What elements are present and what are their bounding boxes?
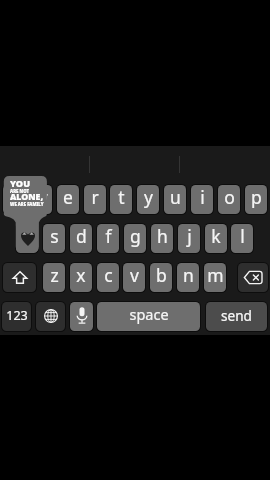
button[interactable]: j	[178, 224, 200, 253]
staticText: YOU	[10, 178, 30, 190]
button[interactable]: f	[97, 224, 119, 253]
button[interactable]: s	[43, 224, 65, 253]
staticText: send	[221, 306, 252, 325]
staticText: l	[240, 224, 245, 248]
staticText: q	[9, 185, 20, 209]
button[interactable]: space	[97, 302, 200, 331]
button[interactable]: r	[84, 185, 106, 214]
button[interactable]: g	[124, 224, 146, 253]
button[interactable]: Voice input	[70, 302, 93, 331]
staticText: b	[156, 263, 167, 287]
button[interactable]: q	[3, 185, 25, 214]
staticText: i	[200, 185, 205, 209]
staticText: d	[76, 224, 87, 248]
button[interactable]: u	[164, 185, 186, 214]
staticText: 123	[6, 307, 28, 324]
button[interactable]: m	[204, 263, 226, 292]
staticText: w	[34, 185, 48, 209]
button[interactable]: w	[30, 185, 52, 214]
button[interactable]: x	[70, 263, 92, 292]
button[interactable]: d	[70, 224, 92, 253]
staticText: g	[130, 224, 141, 248]
staticText: o	[224, 185, 235, 209]
button[interactable]: Heart sticker	[16, 224, 38, 253]
button[interactable]: p	[245, 185, 267, 214]
button[interactable]: h	[151, 224, 173, 253]
button[interactable]: o	[218, 185, 240, 214]
button[interactable]: t	[110, 185, 132, 214]
button[interactable]: n	[177, 263, 199, 292]
button[interactable]: k	[205, 224, 227, 253]
button[interactable]: 123	[2, 302, 31, 331]
staticText: space	[129, 304, 169, 324]
staticText: f	[105, 224, 112, 248]
staticText: k	[211, 224, 221, 248]
staticText: p	[251, 185, 262, 209]
button[interactable]: send	[206, 302, 267, 331]
staticText: s	[50, 224, 59, 248]
staticText: y	[144, 185, 153, 209]
staticText: z	[50, 263, 59, 287]
staticText: t	[118, 185, 125, 209]
button[interactable]: b	[150, 263, 172, 292]
staticText: n	[183, 263, 194, 287]
button[interactable]: Shift	[3, 263, 36, 292]
staticText: c	[104, 263, 113, 287]
staticText: v	[130, 263, 139, 287]
button[interactable]: y	[137, 185, 159, 214]
button[interactable]: c	[97, 263, 119, 292]
button[interactable]: i	[191, 185, 213, 214]
button[interactable]: e	[57, 185, 79, 214]
button[interactable]: l	[231, 224, 253, 253]
staticText: WE ARE FAMILY	[10, 201, 44, 208]
staticText: e	[63, 185, 73, 209]
staticText: j	[187, 224, 192, 248]
staticText: r	[91, 185, 99, 209]
button[interactable]: v	[123, 263, 145, 292]
staticText: ALONE,	[10, 191, 44, 203]
staticText: m	[207, 263, 224, 287]
button[interactable]: z	[43, 263, 65, 292]
staticText: h	[157, 224, 168, 248]
staticText: u	[170, 185, 181, 209]
button[interactable]: Switch keyboard language	[36, 302, 65, 331]
button[interactable]: Backspace	[238, 263, 268, 292]
staticText: x	[76, 263, 86, 287]
staticText: ARE NOT	[10, 188, 30, 195]
